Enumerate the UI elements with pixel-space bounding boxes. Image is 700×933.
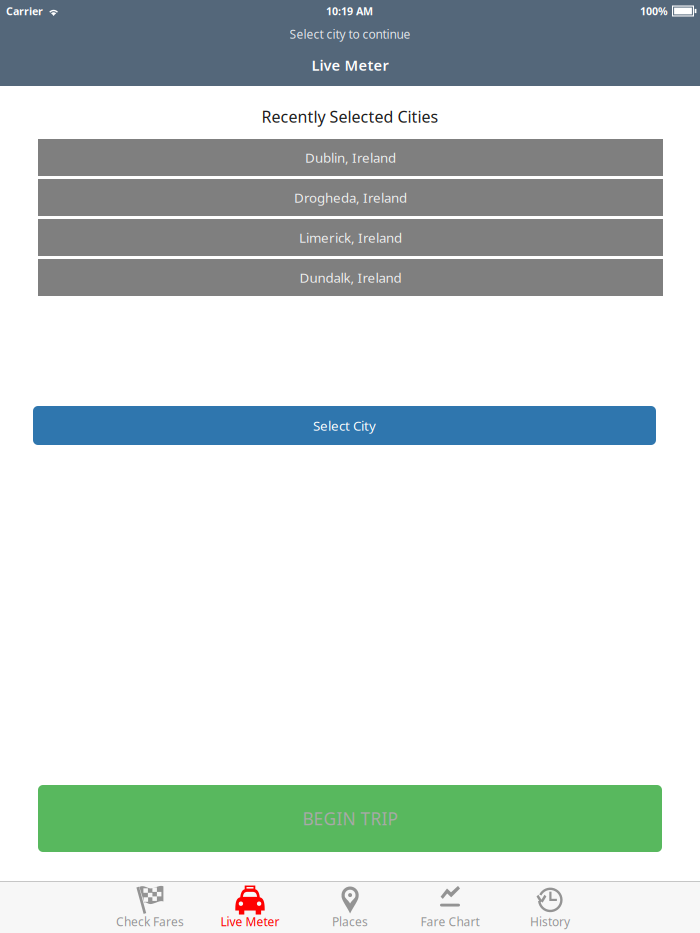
staticText: Fare Chart: [420, 913, 479, 929]
button[interactable]: Places: [300, 881, 400, 933]
staticText: Dublin, Ireland: [305, 149, 396, 166]
staticText: 100%: [640, 4, 668, 18]
button[interactable]: BEGIN TRIP: [38, 785, 662, 852]
staticText: Drogheda, Ireland: [294, 189, 407, 206]
button[interactable]: Limerick, Ireland: [38, 219, 663, 256]
staticText: Places: [332, 913, 368, 929]
staticText: Dundalk, Ireland: [299, 269, 401, 286]
staticText: History: [530, 913, 570, 929]
staticText: 10:19 AM: [326, 4, 373, 18]
staticText: Live Meter: [311, 55, 388, 75]
staticText: BEGIN TRIP: [302, 807, 397, 830]
button[interactable]: Fare Chart: [400, 881, 500, 933]
staticText: Carrier: [6, 4, 43, 18]
button[interactable]: Drogheda, Ireland: [38, 179, 663, 216]
button[interactable]: Dublin, Ireland: [38, 139, 663, 176]
staticText: Select city to continue: [289, 26, 410, 42]
staticText: Recently Selected Cities: [261, 106, 438, 127]
button[interactable]: Check Fares: [100, 881, 200, 933]
button[interactable]: History: [500, 881, 600, 933]
staticText: Limerick, Ireland: [299, 229, 402, 246]
staticText: Live Meter: [220, 913, 279, 929]
staticText: Check Fares: [116, 913, 184, 929]
button[interactable]: Select City: [33, 406, 656, 445]
staticText: Select City: [313, 417, 376, 434]
button[interactable]: Live Meter: [200, 881, 300, 933]
button[interactable]: Dundalk, Ireland: [38, 259, 663, 296]
